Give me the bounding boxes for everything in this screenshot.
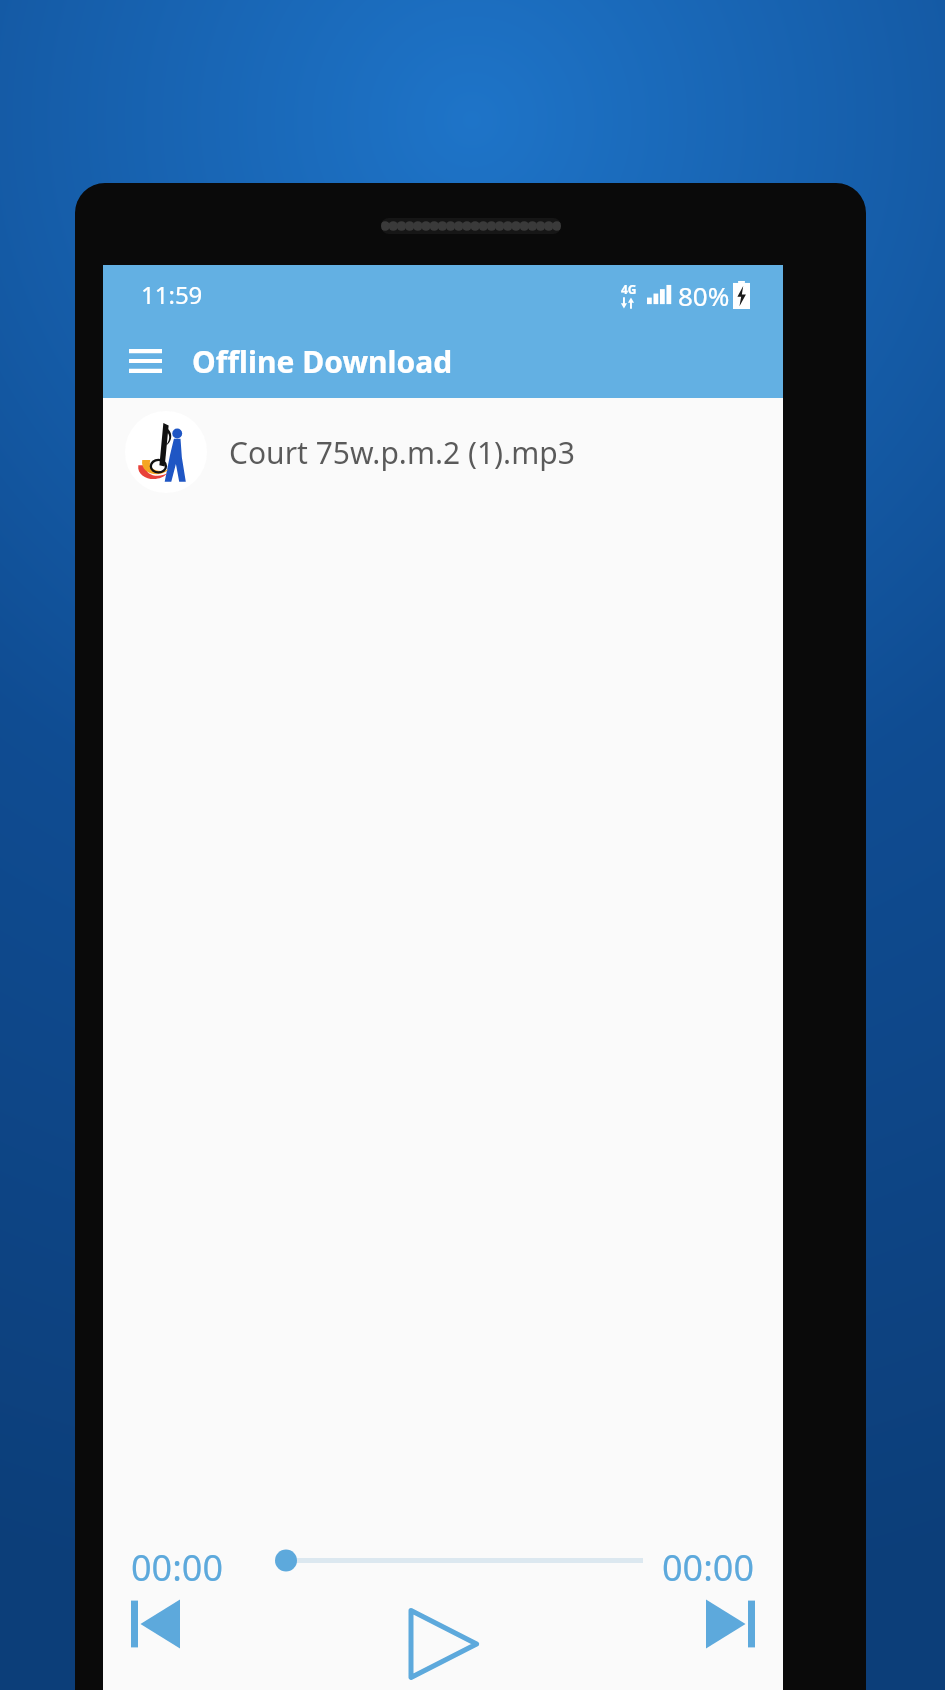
staticText: 00:00 [662,1543,755,1592]
button[interactable]: Seek bar [273,1536,643,1572]
button[interactable]: Play [393,1598,493,1690]
button[interactable]: Open navigation menu [121,337,169,385]
button[interactable]: Previous track [131,1598,195,1658]
staticText: Offline Download [192,341,453,382]
button[interactable]: Court 75w.p.m.2 (1).mp3 [103,398,783,506]
staticText: Court 75w.p.m.2 (1).mp3 [229,432,575,473]
staticText: 80% [678,278,730,313]
staticText: 00:00 [131,1543,224,1592]
staticText: 4G [621,281,637,297]
button[interactable]: Next track [691,1598,755,1658]
staticText: 11:59 [141,278,203,311]
